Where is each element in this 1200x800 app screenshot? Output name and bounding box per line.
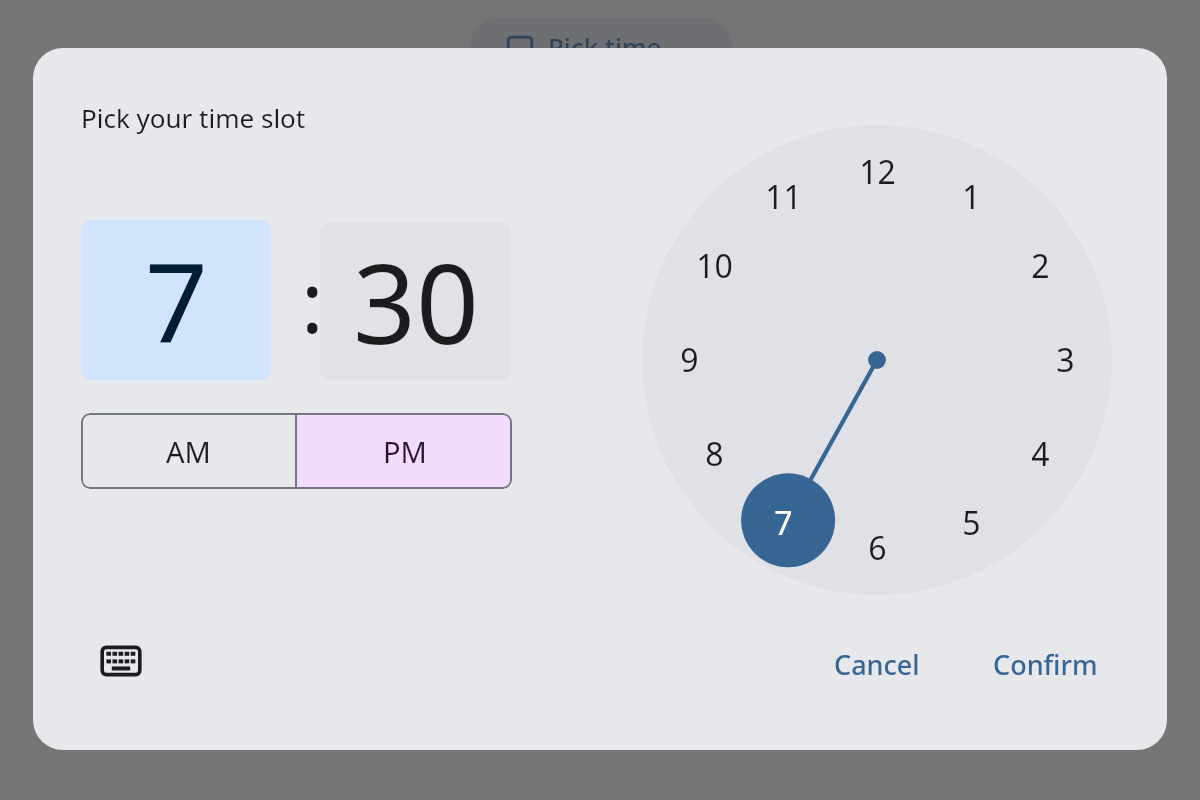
button[interactable]: 1 <box>937 169 1005 225</box>
staticText: Cancel <box>834 646 920 683</box>
staticText: 3 <box>1056 338 1075 382</box>
button[interactable]: 4 <box>1006 426 1074 482</box>
staticText: 8 <box>705 432 724 476</box>
staticText: 5 <box>962 501 981 545</box>
staticText: 1 <box>962 175 981 219</box>
button[interactable]: 9 <box>655 332 723 388</box>
button[interactable]: 10 <box>680 238 748 294</box>
staticText: 2 <box>1031 244 1050 288</box>
button[interactable]: 12 <box>843 144 911 200</box>
staticText: 6 <box>868 526 887 570</box>
staticText: Confirm <box>993 646 1098 683</box>
staticText: Pick time <box>548 29 662 64</box>
staticText: 11 <box>765 175 802 219</box>
button[interactable]: 2 <box>1006 238 1074 294</box>
button[interactable]: 5 <box>937 495 1005 551</box>
button[interactable]: Switch to text input <box>93 633 149 689</box>
button[interactable]: Confirm <box>969 636 1121 692</box>
button[interactable]: 7 <box>81 220 271 380</box>
staticText: AM <box>166 432 211 471</box>
button[interactable]: Pick time <box>470 18 732 74</box>
staticText: : <box>301 243 324 357</box>
button[interactable]: AM <box>81 413 295 489</box>
staticText: 4 <box>1031 432 1050 476</box>
button[interactable]: 30 <box>320 222 511 380</box>
staticText: 7 <box>145 225 208 375</box>
button[interactable]: 7 <box>749 495 817 551</box>
button[interactable]: 11 <box>749 169 817 225</box>
button[interactable]: PM <box>297 413 512 489</box>
staticText: PM <box>383 432 427 471</box>
staticText: 9 <box>680 338 699 382</box>
staticText: 7 <box>774 501 793 545</box>
button[interactable]: 3 <box>1031 332 1099 388</box>
staticText: 10 <box>696 244 733 288</box>
staticText: Pick your time slot <box>81 100 306 135</box>
staticText: 12 <box>859 150 896 194</box>
button[interactable]: 6 <box>843 520 911 576</box>
button[interactable]: Cancel <box>811 636 943 692</box>
button[interactable]: 8 <box>680 426 748 482</box>
staticText: 30 <box>353 226 479 376</box>
